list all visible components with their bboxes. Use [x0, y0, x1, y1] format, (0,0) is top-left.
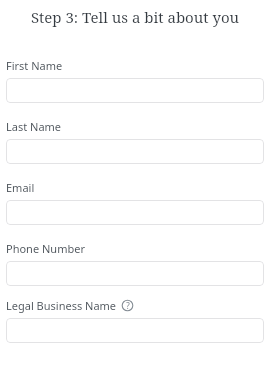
staticText: ? — [126, 300, 130, 311]
staticText: Phone Number — [6, 241, 85, 256]
button[interactable] — [6, 318, 264, 343]
button[interactable]: Help about Legal Business Name — [121, 299, 134, 312]
button[interactable] — [6, 139, 264, 164]
button[interactable] — [6, 200, 264, 225]
staticText: Step 3: Tell us a bit about you — [6, 7, 264, 27]
button[interactable] — [6, 78, 264, 103]
staticText: Legal Business Name — [6, 298, 117, 313]
button[interactable] — [6, 261, 264, 286]
staticText: Last Name — [6, 119, 62, 134]
staticText: First Name — [6, 58, 63, 73]
staticText: Email — [6, 180, 35, 195]
